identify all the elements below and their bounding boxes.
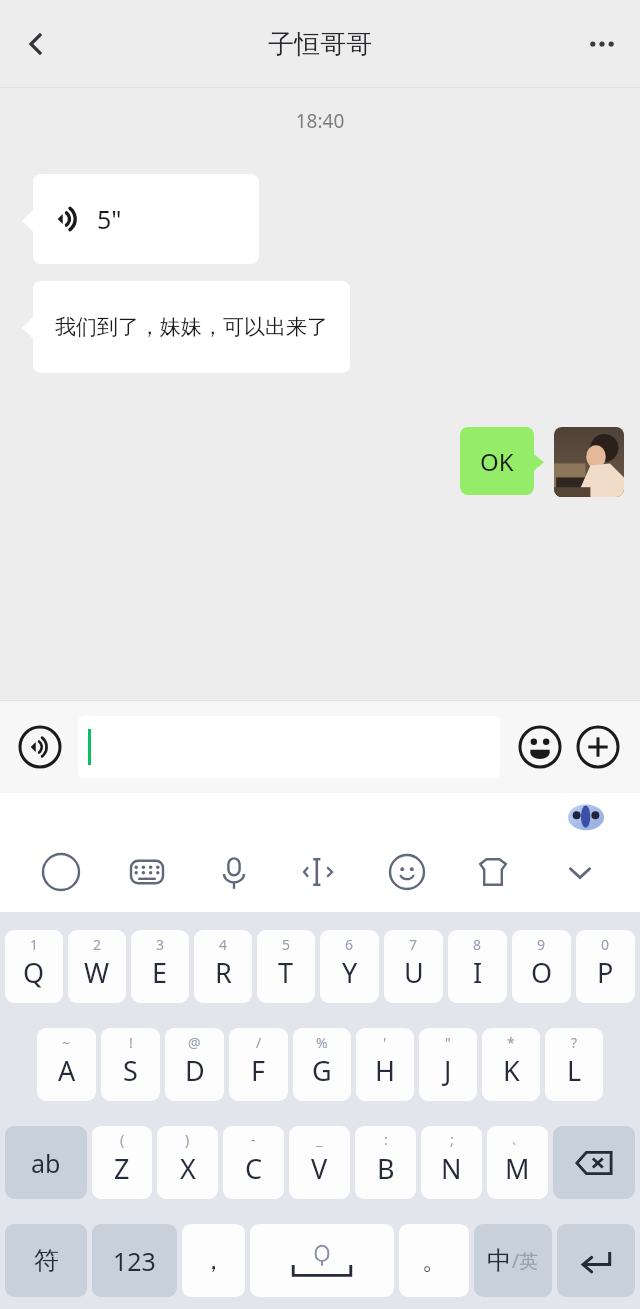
button[interactable]: 9 [512, 930, 571, 1003]
button[interactable]: 3 [131, 930, 189, 1003]
staticText: 4 [219, 935, 228, 954]
button[interactable]: 4 [194, 930, 252, 1003]
staticText: ; [450, 1130, 454, 1149]
button[interactable]: 2 [68, 930, 126, 1003]
staticText: 0 [601, 935, 610, 954]
staticText: U [404, 954, 424, 991]
staticText: 我们到了，妹妹，可以出来了 [55, 314, 328, 340]
button[interactable]: 。 [399, 1224, 469, 1297]
button[interactable] [78, 716, 500, 778]
button[interactable]: ~ [37, 1028, 96, 1101]
button[interactable]: Input method [35, 846, 87, 898]
button[interactable]: Hide keyboard [554, 846, 606, 898]
staticText: E [152, 954, 168, 991]
button[interactable]: More options [574, 16, 630, 72]
button[interactable]: 123 [92, 1224, 177, 1297]
staticText: 9 [537, 935, 546, 954]
button[interactable]: " [419, 1028, 477, 1101]
staticText: 。 [422, 1245, 447, 1276]
button[interactable]: Voice input [16, 723, 64, 771]
button[interactable]: 0 [576, 930, 635, 1003]
staticText: 3 [156, 935, 165, 954]
staticText: C [245, 1150, 263, 1187]
staticText: V [311, 1150, 328, 1187]
button[interactable]: 6 [320, 930, 379, 1003]
button[interactable]: 8 [448, 930, 507, 1003]
button[interactable]: Sticker [381, 846, 433, 898]
button[interactable]: 符 [5, 1224, 87, 1297]
staticText: 18:40 [0, 108, 640, 134]
staticText: M [505, 1150, 530, 1187]
button[interactable]: OK [460, 427, 534, 495]
button[interactable]: ; [421, 1126, 482, 1199]
button[interactable]: 5" [33, 174, 259, 264]
staticText: F [251, 1052, 266, 1089]
button[interactable]: 中 [474, 1224, 552, 1297]
staticText: O [531, 954, 553, 991]
button[interactable]: Theme [467, 846, 519, 898]
button[interactable]: ， [182, 1224, 245, 1297]
staticText: D [185, 1052, 205, 1089]
button[interactable]: ? [545, 1028, 603, 1101]
staticText: 5" [97, 202, 122, 236]
button[interactable]: Voice [208, 846, 260, 898]
staticText: 、 [511, 1130, 525, 1148]
staticText: B [377, 1150, 395, 1187]
staticText: Z [114, 1150, 130, 1187]
button[interactable]: : [355, 1126, 416, 1199]
button[interactable]: * [482, 1028, 540, 1101]
button[interactable]: ) [157, 1126, 218, 1199]
staticText: L [567, 1052, 582, 1089]
staticText: - [251, 1130, 256, 1149]
staticText: 123 [113, 1244, 156, 1278]
staticText: 8 [473, 935, 482, 954]
staticText: 中 [487, 1245, 512, 1276]
button[interactable]: _ [289, 1126, 350, 1199]
staticText: W [84, 954, 110, 991]
button[interactable]: 5 [257, 930, 315, 1003]
button[interactable]: 、 [487, 1126, 548, 1199]
staticText: ( [120, 1130, 125, 1149]
staticText: H [375, 1052, 396, 1089]
staticText: * [507, 1033, 515, 1052]
button[interactable]: ab [5, 1126, 87, 1199]
staticText: R [215, 954, 232, 991]
staticText: : [384, 1130, 388, 1149]
staticText: J [444, 1052, 452, 1089]
button[interactable]: % [293, 1028, 351, 1101]
button[interactable]: ! [101, 1028, 160, 1101]
staticText: K [503, 1052, 520, 1089]
button[interactable]: Space [250, 1224, 394, 1297]
staticText: 5 [282, 935, 291, 954]
staticText: ) [185, 1130, 190, 1149]
staticText: ab [31, 1146, 61, 1180]
button[interactable]: Cursor [294, 846, 346, 898]
staticText: G [312, 1052, 332, 1089]
button[interactable]: Backspace [553, 1126, 635, 1199]
button[interactable]: 1 [5, 930, 63, 1003]
staticText: _ [316, 1130, 323, 1149]
button[interactable]: Emoji [514, 721, 566, 773]
button[interactable]: Avatar [554, 427, 624, 497]
staticText: X [180, 1150, 196, 1187]
button[interactable]: More functions [572, 721, 624, 773]
staticText: ， [201, 1245, 226, 1276]
staticText: ~ [62, 1033, 71, 1052]
staticText: Y [342, 954, 358, 991]
staticText: Q [23, 954, 45, 991]
staticText: 符 [34, 1245, 59, 1276]
staticText: " [445, 1033, 451, 1052]
staticText: ' [383, 1033, 387, 1052]
staticText: ! [129, 1033, 133, 1052]
button[interactable]: - [223, 1126, 284, 1199]
button[interactable]: ( [92, 1126, 152, 1199]
button[interactable]: Keyboard layout [121, 846, 173, 898]
button[interactable]: ' [356, 1028, 414, 1101]
staticText: P [597, 954, 614, 991]
button[interactable]: @ [165, 1028, 224, 1101]
button[interactable]: Enter [557, 1224, 635, 1297]
button[interactable]: 7 [384, 930, 443, 1003]
button[interactable]: 我们到了，妹妹，可以出来了 [33, 281, 350, 373]
button[interactable]: Back [8, 16, 64, 72]
button[interactable]: / [229, 1028, 288, 1101]
